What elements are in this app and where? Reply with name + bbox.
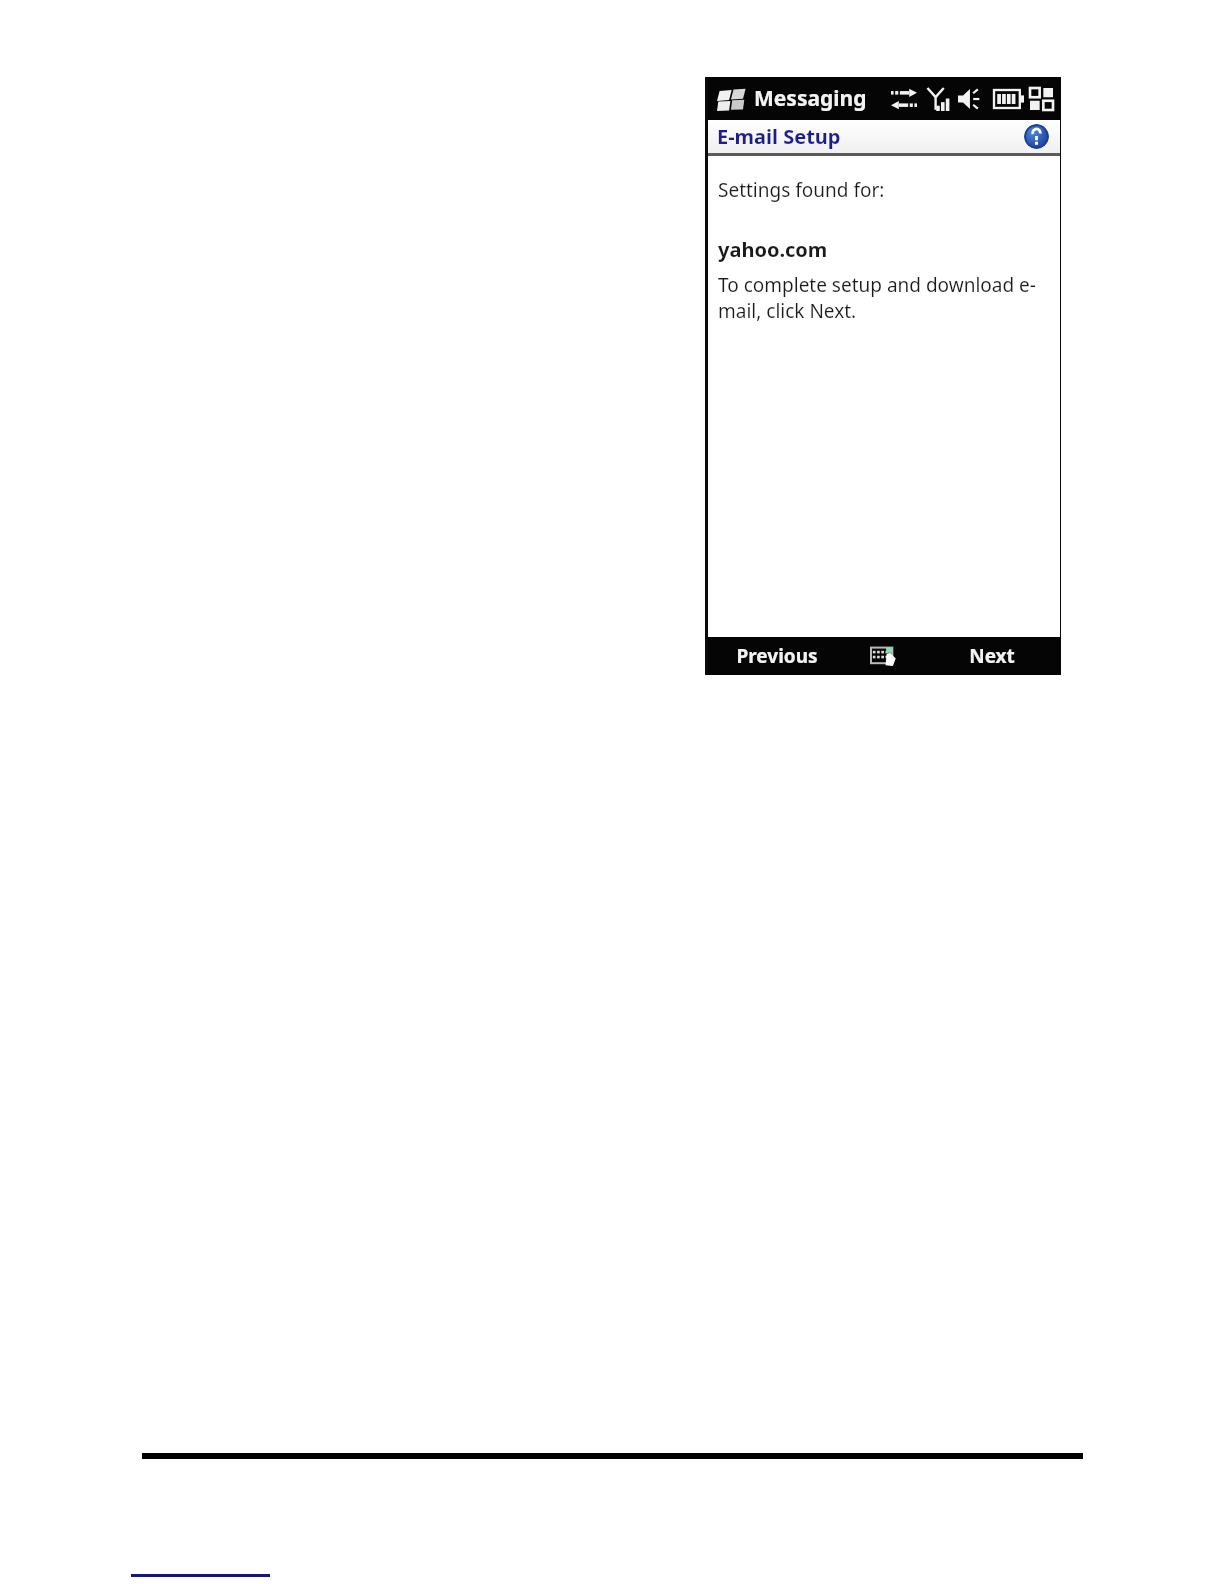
staticText: yahoo.com xyxy=(718,236,828,263)
button[interactable]: Next xyxy=(923,637,1060,675)
staticText: Settings found for: xyxy=(718,177,885,203)
staticText: Previous xyxy=(736,643,818,669)
staticText: To complete setup and download e-mail, c… xyxy=(718,272,1046,324)
button[interactable]: Previous xyxy=(708,637,845,675)
staticText: Messaging xyxy=(754,84,867,113)
button[interactable]: Help xyxy=(1024,124,1049,149)
button[interactable]: Input panel xyxy=(845,637,923,675)
staticText: E-mail Setup xyxy=(717,123,841,150)
staticText: Next xyxy=(969,643,1015,669)
